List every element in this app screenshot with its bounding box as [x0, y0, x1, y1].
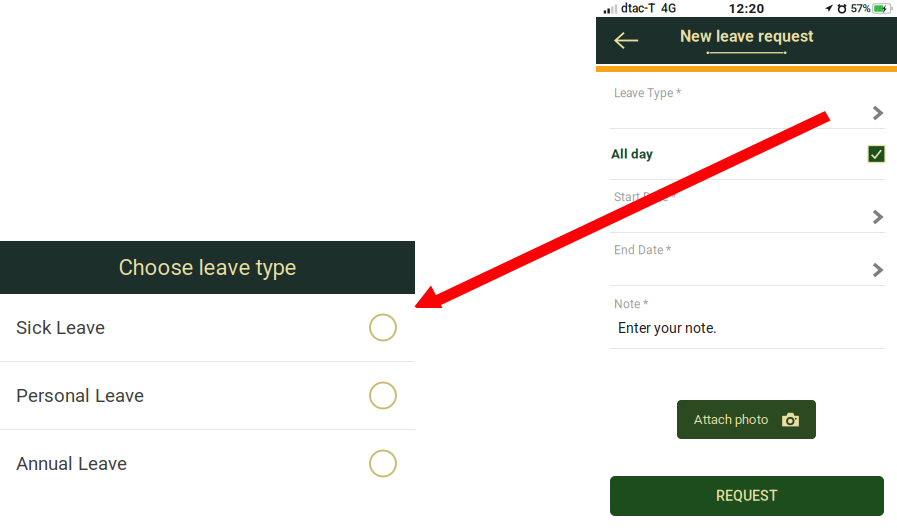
staticText: Sick Leave [16, 317, 105, 338]
staticText: 57% [850, 2, 870, 15]
staticText: dtac-T [621, 1, 655, 16]
button[interactable]: All day [868, 145, 885, 162]
button[interactable]: REQUEST [610, 476, 884, 516]
staticText: Personal Leave [16, 385, 144, 406]
staticText: Annual Leave [16, 453, 127, 474]
staticText: All day [611, 146, 653, 162]
staticText: Note * [614, 297, 648, 311]
button[interactable]: End Date * [596, 233, 897, 285]
staticText: Leave Type * [614, 86, 681, 100]
button[interactable]: Annual Leave [0, 430, 415, 497]
button[interactable]: Sick Leave [0, 294, 415, 361]
staticText: End Date * [614, 243, 671, 257]
button[interactable]: Personal Leave [0, 362, 415, 429]
button[interactable]: Attach photo [677, 400, 816, 439]
button[interactable]: Note * [596, 286, 897, 348]
staticText: 4G [661, 1, 676, 16]
staticText: 12:20 [728, 1, 764, 16]
staticText: REQUEST [716, 488, 778, 504]
button[interactable]: Leave Type * [596, 72, 897, 128]
staticText: Enter your note. [618, 320, 717, 336]
staticText: Attach photo [694, 412, 769, 427]
button[interactable]: Back [596, 17, 648, 64]
button[interactable]: Start Date * [596, 180, 897, 232]
staticText: Start Date * [614, 190, 676, 204]
staticText: New leave request [680, 27, 813, 46]
staticText: Choose leave type [118, 254, 296, 280]
